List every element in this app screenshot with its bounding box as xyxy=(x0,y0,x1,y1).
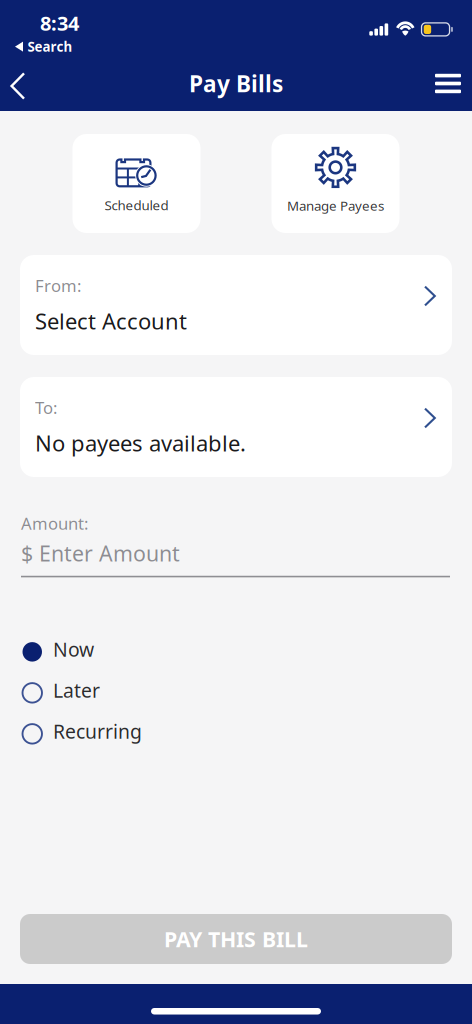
staticText: Scheduled xyxy=(104,196,168,214)
button[interactable]: Now xyxy=(20,631,452,672)
staticText: Manage Payees xyxy=(287,196,384,215)
staticText: From: xyxy=(35,274,81,297)
staticText: Select Account xyxy=(35,306,187,336)
staticText: Now xyxy=(53,636,94,662)
staticText: PAY THIS BILL xyxy=(164,924,308,954)
staticText: Pay Bills xyxy=(189,68,283,99)
button[interactable]: Menu xyxy=(419,56,472,111)
staticText: 8:34 xyxy=(40,9,79,36)
staticText: $ Enter Amount xyxy=(21,539,180,568)
button[interactable]: Recurring xyxy=(20,713,452,754)
staticText: Recurring xyxy=(53,718,142,744)
button[interactable]: Later xyxy=(20,672,452,713)
staticText: Search xyxy=(27,37,72,56)
button[interactable]: PAY THIS BILL xyxy=(20,914,452,964)
staticText: No payees available. xyxy=(35,428,246,458)
button[interactable]: To: xyxy=(20,377,452,477)
button[interactable]: Back xyxy=(0,56,42,111)
staticText: Amount: xyxy=(21,512,88,535)
staticText: Later xyxy=(53,677,100,703)
button[interactable]: From: xyxy=(20,255,452,355)
staticText: To: xyxy=(35,396,57,419)
button[interactable]: Scheduled xyxy=(72,134,200,233)
button[interactable]: Manage Payees xyxy=(271,134,399,233)
